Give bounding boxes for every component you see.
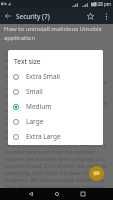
button[interactable]: Bookmark	[84, 10, 97, 23]
staticText: How to uninstall malicious Umobix applic…	[4, 25, 106, 42]
staticText: Security (7)	[16, 12, 50, 21]
button[interactable]: Medium	[8, 99, 103, 114]
button[interactable]: Recents	[76, 188, 89, 200]
staticText: 7:28 pm	[94, 1, 112, 7]
button[interactable]: Extra Large	[8, 129, 103, 144]
staticText: Small	[26, 87, 43, 96]
staticText: Extra Large	[26, 132, 61, 141]
button[interactable]: Chat	[89, 166, 104, 181]
button[interactable]: Extra Small	[8, 69, 103, 84]
button[interactable]: Back	[2, 10, 14, 22]
staticText: Text size	[14, 57, 41, 66]
staticText: Extra Small	[26, 72, 60, 81]
button[interactable]: Small	[8, 84, 103, 99]
staticText: Large	[26, 117, 44, 126]
staticText: Medium	[26, 102, 52, 111]
button[interactable]: Home	[50, 188, 63, 200]
button[interactable]: More options	[100, 10, 112, 22]
button[interactable]: Back	[24, 188, 37, 200]
staticText: programs. We utilize a couple instrument…	[5, 51, 109, 200]
button[interactable]: Large	[8, 114, 103, 129]
